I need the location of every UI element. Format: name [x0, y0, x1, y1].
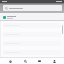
button[interactable]: Profile: [50, 58, 58, 64]
button[interactable]: Favorites: [35, 58, 43, 64]
button[interactable]: [3, 5, 62, 11]
button[interactable]: Search: [21, 58, 29, 64]
other: Account: [3, 16, 6, 19]
button[interactable]: Home: [6, 58, 14, 64]
button[interactable]: Account: [3, 16, 61, 19]
